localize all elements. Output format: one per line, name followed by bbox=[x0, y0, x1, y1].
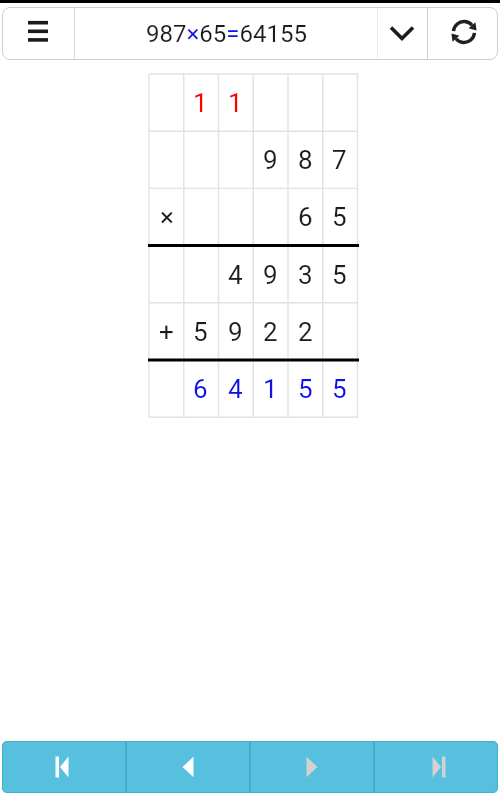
staticText: 1 bbox=[228, 88, 243, 118]
staticText: 6 bbox=[298, 202, 313, 232]
staticText: 5 bbox=[193, 317, 208, 347]
button[interactable] bbox=[377, 7, 427, 60]
staticText: 6 bbox=[193, 374, 208, 404]
staticText: 5 bbox=[298, 374, 313, 404]
button[interactable]: 987×65=64155 bbox=[75, 7, 377, 60]
staticText: 4 bbox=[228, 260, 243, 290]
staticText: 5 bbox=[332, 260, 347, 290]
staticText: + bbox=[159, 317, 174, 347]
staticText: 5 bbox=[332, 202, 347, 232]
staticText: × bbox=[160, 202, 174, 232]
staticText: 1 bbox=[263, 374, 278, 404]
staticText: 1 bbox=[193, 88, 208, 118]
staticText: 9 bbox=[263, 260, 278, 290]
staticText: 8 bbox=[298, 145, 313, 175]
button[interactable] bbox=[2, 7, 74, 60]
staticText: 4 bbox=[228, 374, 243, 404]
staticText: 9 bbox=[263, 145, 278, 175]
button[interactable] bbox=[250, 741, 374, 793]
staticText: 2 bbox=[263, 317, 278, 347]
staticText: 9 bbox=[228, 317, 243, 347]
staticText: 2 bbox=[298, 317, 313, 347]
button[interactable] bbox=[374, 741, 498, 793]
staticText: 5 bbox=[332, 374, 347, 404]
button[interactable] bbox=[2, 741, 126, 793]
staticText: 987×65=64155 bbox=[146, 20, 307, 48]
staticText: 3 bbox=[298, 260, 313, 290]
button[interactable] bbox=[427, 7, 498, 60]
staticText: 7 bbox=[332, 145, 347, 175]
button[interactable] bbox=[126, 741, 250, 793]
